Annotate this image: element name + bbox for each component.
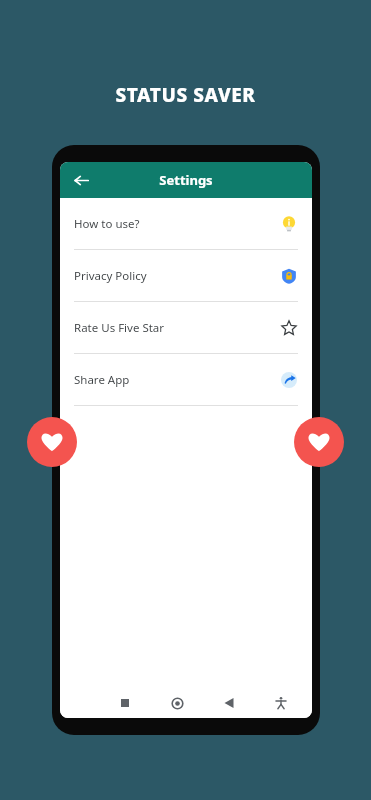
button[interactable]: Recents	[112, 690, 138, 716]
button[interactable]: Privacy Policy	[60, 250, 312, 301]
staticText: Rate Us Five Star	[74, 320, 280, 336]
button[interactable]: Accessibility	[268, 690, 294, 716]
staticText: Privacy Policy	[74, 268, 280, 284]
staticText: Share App	[74, 372, 280, 388]
button[interactable]: How to use?	[60, 198, 312, 249]
button[interactable]: Home	[164, 690, 190, 716]
button[interactable]: Back	[66, 165, 96, 195]
staticText: How to use?	[74, 216, 280, 232]
button[interactable]: Favourite	[27, 417, 77, 467]
button[interactable]: Rate Us Five Star	[60, 302, 312, 353]
button[interactable]: Favourite	[294, 417, 344, 467]
staticText: Settings	[159, 171, 213, 189]
button[interactable]: Back	[216, 690, 242, 716]
button[interactable]: Share App	[60, 354, 312, 405]
staticText: STATUS SAVER	[0, 82, 371, 108]
